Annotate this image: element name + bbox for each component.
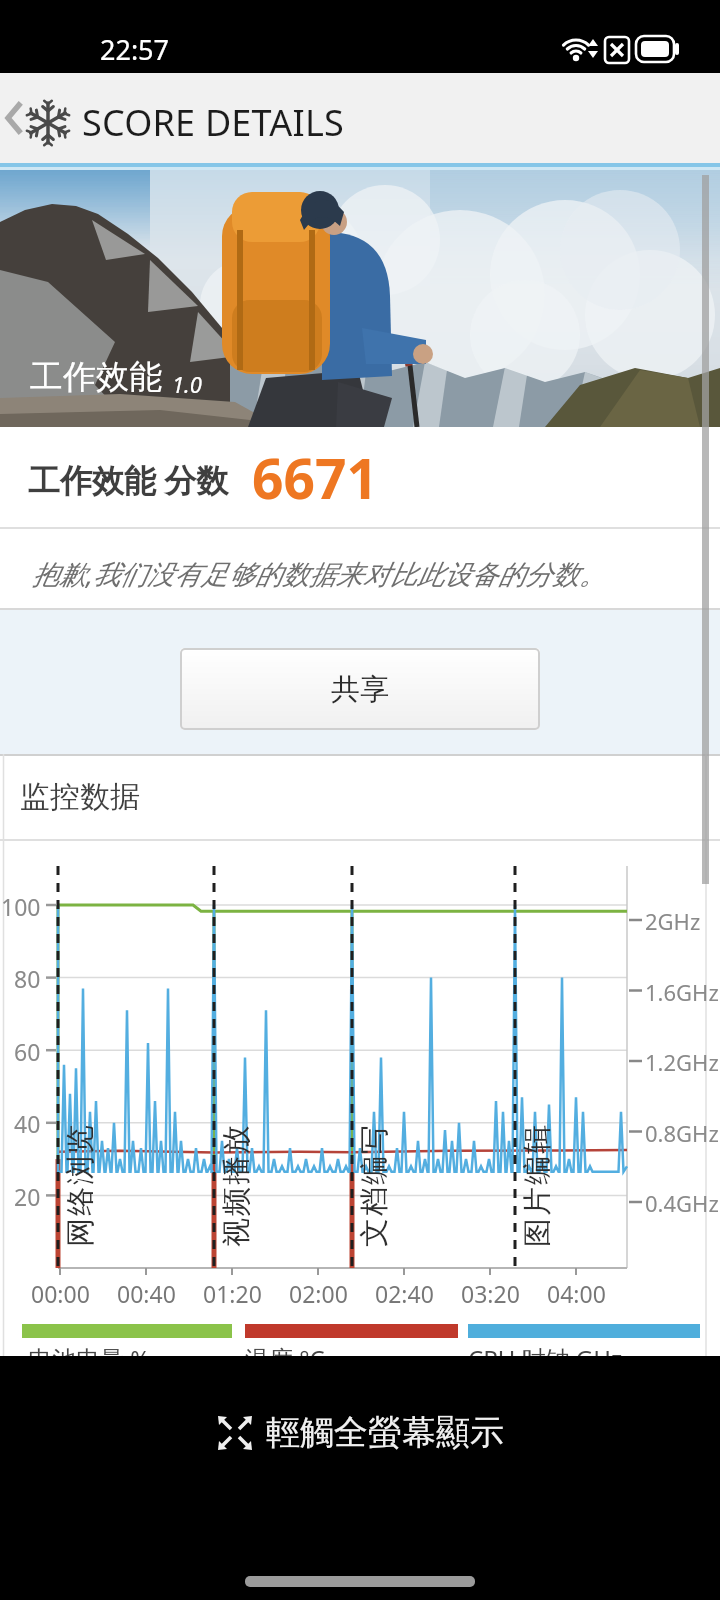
staticText: 20 xyxy=(14,1181,41,1209)
staticText: 輕觸全螢幕顯示 xyxy=(266,1411,504,1454)
staticText: 80 xyxy=(14,963,41,991)
staticText: 40 xyxy=(14,1108,41,1136)
staticText: 02:00 xyxy=(289,1278,348,1304)
staticText: 02:40 xyxy=(375,1278,434,1304)
staticText: 22:57 xyxy=(100,31,170,68)
staticText: 图片编辑 xyxy=(519,1124,551,1248)
staticText: 文档编写 xyxy=(356,1124,388,1248)
staticText: 监控数据 xyxy=(20,778,140,816)
staticText: 01:20 xyxy=(203,1278,262,1304)
staticText: SCORE DETAILS xyxy=(82,98,344,147)
staticText: 1.6GHz xyxy=(645,977,719,1005)
button[interactable] xyxy=(0,93,28,143)
staticText: 03:20 xyxy=(461,1278,520,1304)
staticText: 00:40 xyxy=(117,1278,176,1304)
button[interactable]: 輕觸全螢幕顯示 xyxy=(216,1411,504,1454)
staticText: 6671 xyxy=(252,440,378,515)
staticText: 2GHz xyxy=(645,906,701,934)
staticText: 共享 xyxy=(331,671,389,708)
staticText: 04:00 xyxy=(547,1278,606,1304)
staticText: 抱歉,我们没有足够的数据来对比此设备的分数。 xyxy=(32,555,606,592)
staticText: 网络浏览 xyxy=(62,1124,94,1248)
staticText: CPU 时钟 GHz xyxy=(468,1342,623,1356)
button[interactable]: 共享 xyxy=(180,648,540,730)
staticText: 视频播放 xyxy=(218,1124,250,1248)
staticText: 温度 °C xyxy=(245,1342,325,1356)
staticText: 100 xyxy=(1,891,41,919)
staticText: 00:00 xyxy=(31,1278,90,1304)
staticText: 工作效能 分数 xyxy=(28,458,229,502)
staticText: 工作效能 xyxy=(30,356,162,398)
staticText: 1.2GHz xyxy=(645,1047,719,1075)
staticText: 0.4GHz xyxy=(645,1188,719,1216)
staticText: 60 xyxy=(14,1036,41,1064)
staticText: 1.0 xyxy=(172,369,202,399)
staticText: 0.8GHz xyxy=(645,1118,719,1146)
staticText: 电池电量 % xyxy=(28,1342,151,1356)
